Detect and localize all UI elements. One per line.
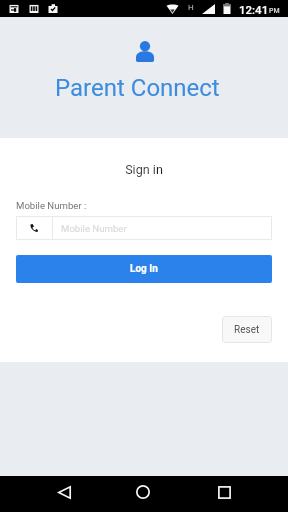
staticText: Log In [130, 263, 158, 275]
staticText: Reset [234, 324, 260, 336]
staticText: Parent Connect [55, 74, 220, 102]
staticText: 12:41 [239, 3, 269, 16]
staticText: H [188, 3, 194, 12]
staticText: Mobile Number [61, 223, 127, 234]
button[interactable]: Mobile Number [16, 216, 272, 240]
button[interactable]: Home [123, 476, 163, 508]
staticText: PM [269, 7, 280, 15]
button[interactable]: Recent apps [204, 476, 244, 508]
button[interactable]: Back [44, 476, 84, 508]
staticText: Mobile Number : [16, 200, 87, 211]
button[interactable]: Log In [16, 255, 272, 283]
button[interactable]: Reset [222, 316, 272, 343]
staticText: Sign in [0, 162, 288, 177]
